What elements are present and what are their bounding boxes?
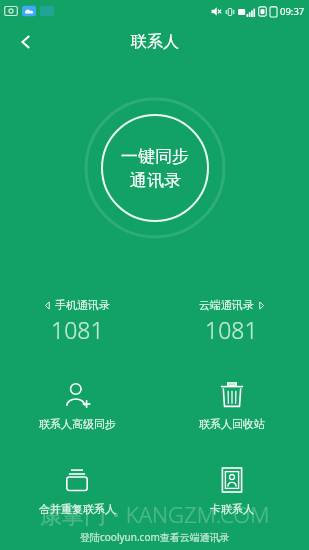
- staticText: 登陆coolyun.com查看云端通讯录: [80, 530, 230, 544]
- staticText: 合并重复联系人: [39, 502, 116, 516]
- staticText: 联系人高级同步: [39, 417, 116, 431]
- staticText: 康掌门 • KANGZM.COM: [40, 499, 270, 529]
- staticText: 1081: [205, 314, 258, 345]
- staticText: 09:37: [280, 5, 305, 18]
- staticText: 一键同步: [121, 146, 189, 167]
- staticText: 手机通讯录: [55, 298, 110, 312]
- button[interactable]: Back: [6, 22, 46, 62]
- staticText: 卡联系人: [210, 502, 254, 516]
- staticText: 通讯录: [130, 170, 181, 191]
- button[interactable]: 联系人回收站: [154, 378, 309, 433]
- button[interactable]: 合并重复联系人: [0, 463, 154, 518]
- staticText: 联系人: [131, 32, 179, 52]
- staticText: 云端通讯录: [199, 298, 254, 312]
- staticText: 联系人回收站: [199, 417, 265, 431]
- staticText: 1081: [51, 314, 104, 345]
- button[interactable]: 云端通讯录: [154, 296, 309, 347]
- button[interactable]: 手机通讯录: [0, 296, 154, 347]
- button[interactable]: 一键同步: [84, 97, 226, 239]
- button[interactable]: 联系人高级同步: [0, 378, 154, 433]
- button[interactable]: 卡联系人: [154, 463, 309, 518]
